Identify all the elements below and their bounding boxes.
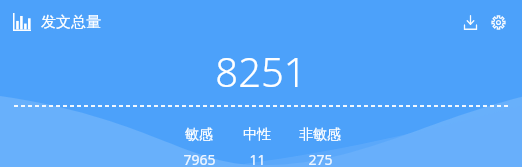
button[interactable]: Download	[458, 10, 482, 34]
staticText: 敏感	[185, 126, 213, 144]
button[interactable]: Settings	[486, 10, 510, 34]
button[interactable]: 非敏感	[289, 126, 351, 167]
staticText: 11	[249, 150, 266, 167]
staticText: 发文总量	[41, 13, 101, 32]
staticText: 275	[308, 150, 333, 167]
staticText: 7965	[183, 150, 216, 167]
staticText: 中性	[243, 126, 271, 144]
button[interactable]: 中性	[235, 126, 279, 167]
staticText: 8251	[215, 44, 307, 92]
staticText: 非敏感	[299, 126, 341, 144]
button[interactable]: 敏感	[171, 126, 227, 167]
